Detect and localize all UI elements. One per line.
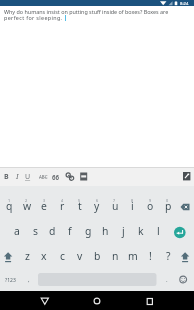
button[interactable]	[175, 270, 193, 291]
staticText: f	[68, 224, 72, 238]
button[interactable]: p	[159, 195, 177, 217]
button[interactable]: d	[43, 220, 61, 242]
button[interactable]: !	[141, 245, 159, 267]
button[interactable]: B	[1, 168, 11, 186]
staticText: k	[138, 224, 144, 238]
staticText: n	[112, 249, 119, 263]
button[interactable]: i	[123, 195, 141, 217]
staticText: v	[77, 249, 83, 263]
staticText: q	[6, 199, 13, 213]
staticText: r	[60, 199, 65, 213]
button[interactable]: c	[53, 245, 71, 267]
button[interactable]: u	[106, 195, 124, 217]
staticText: b	[94, 249, 101, 263]
staticText: 4	[61, 198, 64, 203]
button[interactable]	[170, 222, 190, 243]
button[interactable]: I	[12, 168, 22, 186]
staticText: 5	[78, 198, 81, 203]
staticText: 8:24	[180, 1, 189, 7]
staticText: 6	[96, 198, 99, 203]
button[interactable]	[141, 291, 159, 310]
staticText: z	[25, 249, 30, 263]
staticText: B	[4, 172, 9, 182]
staticText: 8	[131, 198, 134, 203]
button[interactable]: w	[18, 195, 36, 217]
button[interactable]	[65, 168, 75, 186]
button[interactable]: 66	[51, 168, 61, 186]
button[interactable]	[181, 168, 193, 186]
button[interactable]: m	[124, 245, 142, 267]
button[interactable]: U	[23, 168, 33, 186]
button[interactable]	[36, 291, 54, 310]
staticText: w	[23, 199, 32, 213]
button[interactable]: t	[71, 195, 89, 217]
button[interactable]: x	[35, 245, 53, 267]
button[interactable]	[177, 246, 194, 268]
button[interactable]	[176, 196, 194, 218]
button[interactable]: b	[88, 245, 106, 267]
button[interactable]: o	[141, 195, 159, 217]
staticText: s	[33, 224, 38, 238]
button[interactable]: l	[149, 220, 167, 242]
button[interactable]: k	[132, 220, 150, 242]
staticText: g	[85, 224, 92, 238]
staticText: m	[128, 249, 138, 263]
staticText: 1	[8, 198, 11, 203]
staticText: c	[60, 249, 65, 263]
button[interactable]	[88, 291, 106, 310]
button[interactable]: ,	[20, 269, 38, 291]
staticText: e	[41, 199, 47, 213]
button[interactable]	[79, 168, 89, 186]
button[interactable]: h	[96, 220, 114, 242]
button[interactable]: ABC	[36, 168, 50, 186]
staticText: o	[147, 199, 154, 213]
button[interactable]: e	[35, 195, 53, 217]
staticText: i	[131, 199, 134, 213]
staticText: 66	[52, 173, 60, 181]
button[interactable]: s	[26, 220, 44, 242]
staticText: x	[41, 249, 47, 263]
button[interactable]: ?123	[0, 270, 20, 291]
button[interactable]: a	[8, 220, 26, 242]
staticText: a	[14, 224, 20, 238]
staticText: d	[49, 224, 56, 238]
staticText: U	[25, 172, 31, 182]
staticText: 7	[113, 198, 116, 203]
staticText: I	[16, 172, 19, 182]
staticText: ,	[28, 276, 30, 284]
button[interactable]: y	[88, 195, 106, 217]
staticText: ?123	[5, 277, 16, 284]
staticText: 9	[149, 198, 152, 203]
staticText: p	[165, 199, 172, 213]
staticText: !	[149, 249, 152, 263]
button[interactable]: v	[71, 245, 89, 267]
staticText: u	[112, 199, 119, 213]
staticText: ?	[166, 249, 171, 263]
button[interactable]: z	[18, 245, 36, 267]
button[interactable]: ?	[159, 245, 177, 267]
staticText: y	[94, 199, 100, 213]
button[interactable]: n	[106, 245, 124, 267]
button[interactable]	[0, 246, 17, 268]
button[interactable]: j	[114, 220, 132, 242]
staticText: ABC	[39, 174, 48, 180]
staticText: 3	[43, 198, 46, 203]
button[interactable]: r	[53, 195, 71, 217]
button[interactable]: f	[61, 220, 79, 242]
staticText: Why do humans insist on putting stuff in…	[4, 8, 169, 15]
button[interactable]: g	[79, 220, 97, 242]
staticText: .	[166, 276, 168, 284]
staticText: perfect for sleeping.	[4, 14, 63, 21]
button[interactable]: q	[0, 195, 18, 217]
staticText: 2	[25, 198, 28, 203]
staticText: j	[122, 224, 125, 238]
staticText: l	[157, 224, 160, 238]
staticText: t	[78, 199, 82, 213]
staticText: 0	[166, 198, 169, 203]
staticText: h	[102, 224, 109, 238]
